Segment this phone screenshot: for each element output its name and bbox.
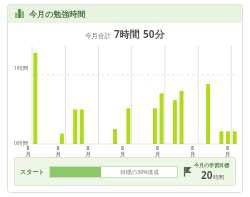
staticText: 7時間 (114, 27, 140, 41)
staticText: 8月31日 (224, 144, 231, 157)
staticText: 目標の39%達成 (120, 168, 159, 176)
staticText: 8月21日 (154, 144, 161, 157)
staticText: 時間 (213, 174, 224, 181)
staticText: 8月1日 (25, 144, 31, 157)
staticText: 今月の勉強時間 (29, 9, 86, 19)
staticText: 20 (201, 168, 213, 182)
button[interactable]: 今月の勉強時間 (15, 4, 243, 23)
staticText: スタート (20, 168, 45, 176)
button[interactable]: スタート (14, 157, 236, 186)
staticText: 0時間 (14, 139, 29, 147)
staticText: 8月6日 (55, 144, 61, 157)
staticText: 今月の学習目標 (194, 162, 230, 168)
staticText: 1時間 (14, 64, 29, 72)
staticText: 今月合計 (85, 32, 111, 40)
staticText: 8月11日 (85, 144, 91, 157)
other: Goal flag (183, 166, 192, 177)
staticText: 50分 (143, 27, 165, 41)
staticText: 8月16日 (119, 144, 126, 157)
staticText: 8月26日 (189, 144, 196, 157)
